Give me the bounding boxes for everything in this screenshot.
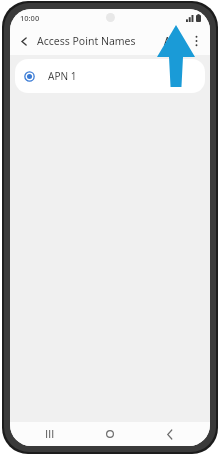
button[interactable]: Back <box>14 31 34 51</box>
staticText: 10:00 <box>20 13 40 23</box>
button[interactable]: Back <box>150 422 190 446</box>
staticText: Add <box>164 34 183 48</box>
button[interactable]: APN 1 <box>15 59 205 93</box>
button[interactable]: Add <box>160 27 187 55</box>
staticText: APN 1 <box>48 69 77 83</box>
button[interactable]: More options <box>187 32 205 50</box>
button[interactable]: Home <box>90 422 130 446</box>
button[interactable]: Recent apps <box>30 422 70 446</box>
staticText: Access Point Names <box>37 34 136 48</box>
